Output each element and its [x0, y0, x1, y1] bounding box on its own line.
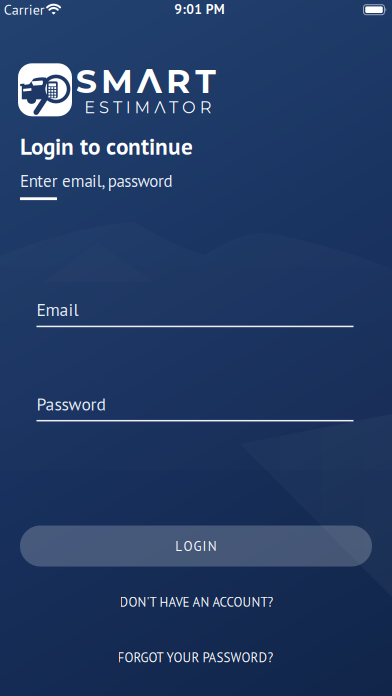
button[interactable]: Email	[36, 298, 353, 327]
staticText: T	[169, 97, 178, 117]
staticText: Λ	[137, 61, 162, 101]
staticText: S	[76, 61, 97, 101]
button[interactable]: FORGOT YOUR PASSWORD?	[109, 643, 281, 672]
staticText: S	[99, 97, 109, 117]
staticText: N	[208, 537, 217, 555]
staticText: M	[101, 61, 133, 101]
staticText: T	[113, 97, 122, 117]
staticText: I	[126, 97, 131, 117]
staticText: M	[134, 97, 150, 117]
staticText: Login to continue	[20, 131, 193, 161]
staticText: T	[195, 61, 216, 101]
staticText: Enter email, password	[20, 170, 173, 192]
staticText: PM	[206, 0, 225, 18]
staticText: R	[200, 97, 212, 117]
staticText: O	[183, 537, 192, 555]
staticText: Email	[36, 298, 78, 321]
staticText: I	[203, 537, 207, 555]
staticText: Λ	[154, 97, 165, 117]
staticText: R	[166, 61, 191, 101]
staticText: O	[182, 97, 196, 117]
button[interactable]: L	[20, 525, 372, 566]
button[interactable]: Password	[36, 393, 353, 421]
button[interactable]: DON'T HAVE AN ACCOUNT?	[111, 587, 281, 616]
staticText: Password	[36, 393, 105, 415]
staticText: DON'T HAVE AN ACCOUNT?	[119, 593, 273, 610]
staticText: Carrier	[4, 0, 45, 19]
staticText: FORGOT YOUR PASSWORD?	[117, 649, 273, 666]
staticText: E	[84, 97, 95, 117]
staticText: 9:01	[174, 0, 202, 18]
staticText: G	[193, 537, 201, 555]
staticText: L	[175, 537, 182, 555]
